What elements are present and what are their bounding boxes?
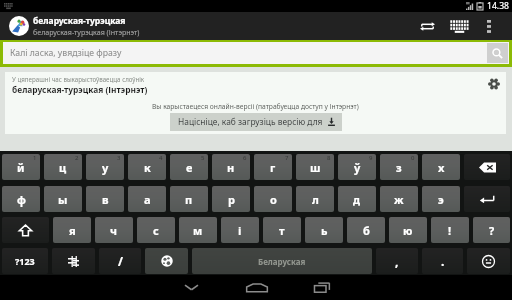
- button[interactable]: н: [212, 154, 250, 180]
- staticText: 5: [201, 154, 205, 162]
- staticText: беларуская-турэцкая: [33, 15, 126, 27]
- button[interactable]: к: [128, 154, 166, 180]
- button[interactable]: ы: [44, 186, 82, 212]
- button[interactable]: м: [179, 217, 217, 243]
- button[interactable]: ь: [305, 217, 343, 243]
- button[interactable]: е: [170, 154, 208, 180]
- button[interactable]: ?: [473, 217, 510, 243]
- staticText: 14.38: [487, 0, 509, 12]
- button[interactable]: в: [86, 186, 124, 212]
- button[interactable]: Enter: [464, 186, 510, 212]
- staticText: ч: [110, 223, 118, 238]
- staticText: ?: [489, 223, 495, 238]
- staticText: я: [69, 223, 76, 238]
- staticText: к: [144, 160, 151, 175]
- button[interactable]: г: [254, 154, 292, 180]
- staticText: м: [193, 223, 203, 238]
- staticText: ?123: [15, 255, 35, 267]
- button[interactable]: ў: [338, 154, 376, 180]
- button[interactable]: Search: [487, 43, 508, 63]
- button[interactable]: і: [221, 217, 259, 243]
- staticText: ц: [59, 160, 67, 175]
- button[interactable]: я: [53, 217, 91, 243]
- staticText: н: [227, 160, 235, 175]
- staticText: /: [118, 253, 123, 269]
- button[interactable]: й: [2, 154, 40, 180]
- staticText: Беларуская: [258, 256, 306, 267]
- button[interactable]: ,: [376, 248, 418, 274]
- button[interactable]: ч: [95, 217, 133, 243]
- button[interactable]: Settings: [482, 72, 506, 96]
- staticText: ь: [321, 223, 328, 238]
- button[interactable]: ш: [296, 154, 334, 180]
- staticText: 8: [327, 154, 331, 162]
- button[interactable]: Emoji: [467, 248, 510, 274]
- staticText: і: [238, 223, 242, 238]
- staticText: б: [363, 223, 370, 238]
- staticText: Вы карыстаецеся онлайн-версіі (патрабуец…: [152, 102, 359, 111]
- button[interactable]: !: [431, 217, 469, 243]
- button[interactable]: з: [380, 154, 418, 180]
- button[interactable]: Input settings: [52, 248, 95, 274]
- button[interactable]: ?123: [2, 248, 48, 274]
- button[interactable]: ц: [44, 154, 82, 180]
- staticText: 9: [369, 154, 373, 162]
- button[interactable]: .: [422, 248, 463, 274]
- staticText: д: [353, 192, 361, 207]
- button[interactable]: п: [170, 186, 208, 212]
- button[interactable]: о: [254, 186, 292, 212]
- button[interactable]: с: [137, 217, 175, 243]
- button[interactable]: More options: [476, 12, 502, 40]
- staticText: У цяперашні час выкарыстоўваецца слоўнік: [12, 75, 145, 83]
- staticText: ф: [17, 192, 26, 207]
- staticText: .: [441, 253, 445, 269]
- staticText: 3: [117, 154, 121, 162]
- staticText: е: [186, 160, 193, 175]
- staticText: х: [438, 160, 445, 175]
- button[interactable]: ю: [389, 217, 427, 243]
- button[interactable]: р: [212, 186, 250, 212]
- button[interactable]: Change language: [145, 248, 188, 274]
- button[interactable]: х: [422, 154, 460, 180]
- staticText: беларуская-турэцкая (Інтэрнэт): [12, 84, 148, 95]
- button[interactable]: Беларуская: [192, 248, 372, 274]
- staticText: п: [185, 192, 193, 207]
- staticText: с: [153, 223, 159, 238]
- staticText: у: [102, 160, 109, 175]
- staticText: й: [17, 160, 25, 175]
- staticText: р: [228, 192, 235, 207]
- button[interactable]: Recent apps: [295, 275, 348, 300]
- staticText: !: [448, 223, 452, 238]
- staticText: Калі ласка, увядзіце фразу: [10, 47, 122, 59]
- button[interactable]: б: [347, 217, 385, 243]
- staticText: л: [312, 192, 319, 207]
- button[interactable]: д: [338, 186, 376, 212]
- staticText: а: [144, 192, 151, 207]
- staticText: ў: [354, 160, 361, 175]
- button[interactable]: Swap languages: [412, 12, 442, 40]
- button[interactable]: Націсніце, каб загрузіць версію для: [170, 113, 342, 131]
- button[interactable]: Keyboard: [442, 12, 476, 40]
- button[interactable]: Home: [230, 275, 283, 300]
- staticText: 0: [411, 154, 415, 162]
- button[interactable]: у: [86, 154, 124, 180]
- staticText: 4: [159, 154, 163, 162]
- button[interactable]: а: [128, 186, 166, 212]
- button[interactable]: э: [422, 186, 460, 212]
- staticText: з: [396, 160, 402, 175]
- button[interactable]: т: [263, 217, 301, 243]
- staticText: г: [270, 160, 276, 175]
- staticText: 1: [33, 154, 37, 162]
- button[interactable]: Shift: [2, 217, 49, 243]
- staticText: 2: [75, 154, 79, 162]
- button[interactable]: ф: [2, 186, 40, 212]
- button[interactable]: /: [99, 248, 141, 274]
- button[interactable]: Hide keyboard: [165, 275, 218, 300]
- staticText: т: [279, 223, 285, 238]
- button[interactable]: л: [296, 186, 334, 212]
- button[interactable]: ж: [380, 186, 418, 212]
- staticText: э: [438, 192, 444, 207]
- button[interactable]: Backspace: [464, 154, 510, 180]
- staticText: ж: [394, 192, 404, 207]
- staticText: ы: [58, 192, 68, 207]
